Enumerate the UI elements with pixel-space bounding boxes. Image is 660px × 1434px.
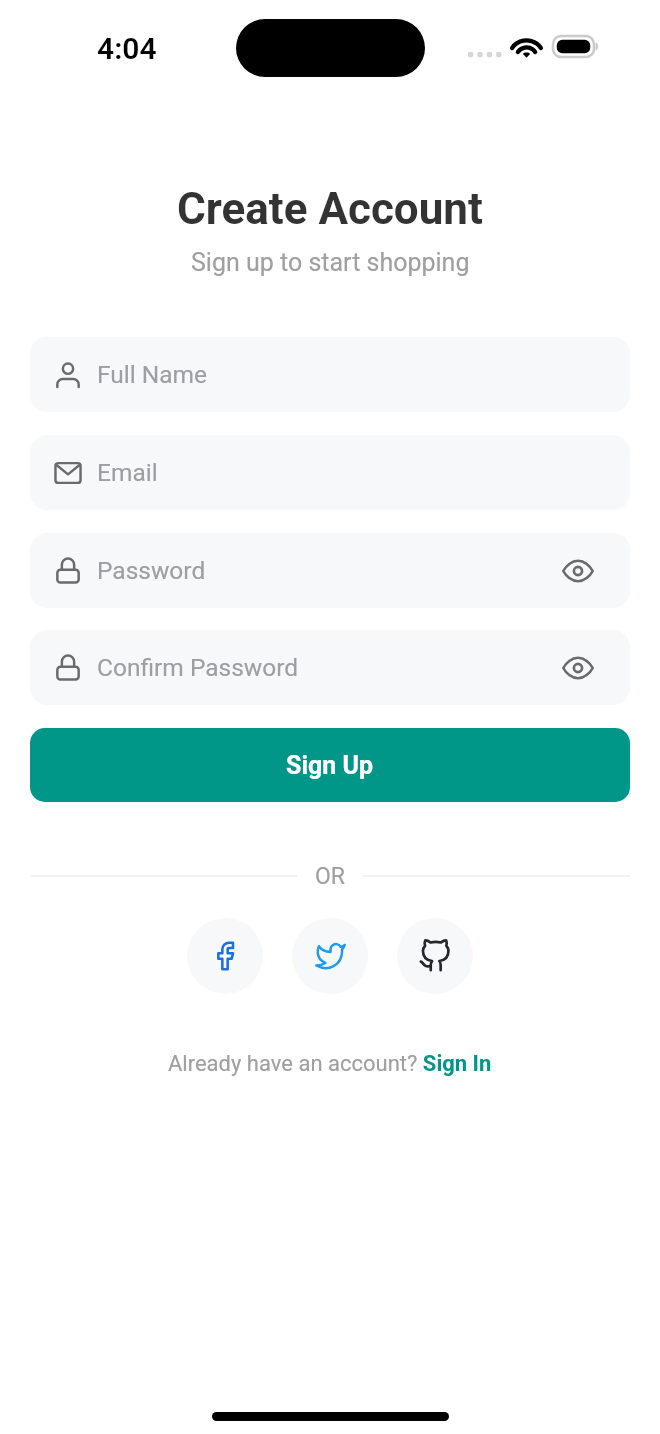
staticText: Create Account bbox=[177, 183, 483, 235]
button[interactable]: Full Name bbox=[30, 337, 630, 412]
staticText: OR bbox=[315, 863, 345, 890]
staticText: 4:04 bbox=[97, 31, 157, 66]
button[interactable]: Sign up with GitHub bbox=[397, 918, 473, 994]
staticText: Sign up to start shopping bbox=[191, 248, 470, 277]
button[interactable]: Confirm Password bbox=[30, 630, 630, 705]
button[interactable]: Sign up with Twitter bbox=[292, 918, 368, 994]
button[interactable]: Sign up with Facebook bbox=[187, 918, 263, 994]
staticText: Confirm Password bbox=[97, 653, 299, 682]
button[interactable]: Sign Up bbox=[30, 728, 630, 802]
button[interactable]: Already have an account? Sign In bbox=[162, 1048, 498, 1080]
button[interactable]: Show password bbox=[553, 546, 603, 596]
button[interactable]: Password bbox=[30, 533, 630, 608]
staticText: Email bbox=[97, 458, 158, 487]
staticText: Already have an account? Sign In bbox=[168, 1051, 492, 1077]
staticText: Full Name bbox=[97, 360, 208, 389]
button[interactable]: Show password bbox=[553, 643, 603, 693]
button[interactable]: Email bbox=[30, 435, 630, 510]
staticText: Password bbox=[97, 556, 206, 585]
staticText: Sign Up bbox=[286, 751, 374, 780]
